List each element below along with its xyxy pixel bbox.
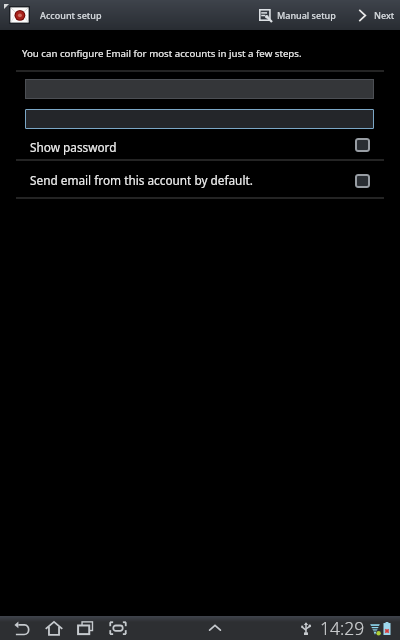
- button[interactable]: Next: [352, 0, 399, 30]
- button[interactable]: Screenshot: [107, 617, 129, 639]
- button[interactable]: Manual setup: [255, 0, 340, 30]
- button[interactable]: Send email from this account by default.: [0, 161, 400, 198]
- button[interactable]: Home: [43, 617, 65, 639]
- staticText: 14:29: [320, 616, 365, 640]
- button[interactable]: [25, 79, 374, 99]
- staticText: Next: [374, 9, 395, 21]
- staticText: Send email from this account by default.: [30, 172, 253, 188]
- button[interactable]: Recent apps: [75, 617, 97, 639]
- staticText: Show password: [30, 139, 117, 155]
- staticText: Account setup: [40, 9, 102, 21]
- button[interactable]: [25, 109, 374, 129]
- staticText: You can configure Email for most account…: [22, 47, 302, 60]
- staticText: Manual setup: [277, 9, 336, 21]
- button[interactable]: Show password: [0, 131, 400, 160]
- button[interactable]: Back: [11, 617, 33, 639]
- button[interactable]: Show notifications: [204, 617, 226, 639]
